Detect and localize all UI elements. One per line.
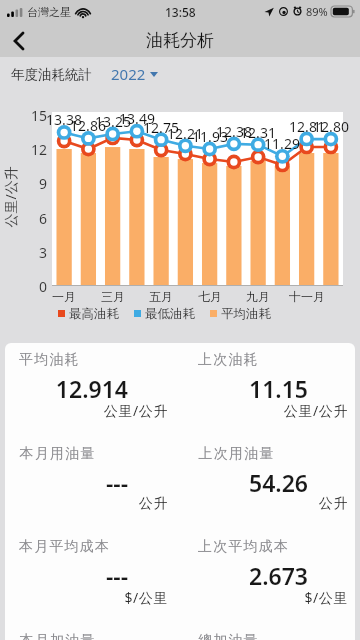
staticText: 2022 bbox=[111, 64, 146, 84]
staticText: 12.21 bbox=[166, 124, 204, 143]
staticText: 13.38 bbox=[45, 110, 83, 129]
staticText: 油耗分析 bbox=[146, 30, 214, 51]
staticText: 12.31 bbox=[239, 123, 277, 142]
staticText: $/公里 bbox=[193, 588, 348, 607]
staticText: 13.25 bbox=[94, 112, 132, 131]
staticText: 13.49 bbox=[118, 109, 156, 128]
staticText: 台灣之星 bbox=[27, 5, 71, 19]
staticText: --- bbox=[14, 467, 128, 498]
staticText: 13:58 bbox=[165, 4, 196, 20]
staticText: 公里/公升 bbox=[193, 401, 348, 420]
staticText: 2.673 bbox=[193, 560, 308, 591]
staticText: 12.86 bbox=[69, 116, 107, 135]
staticText: 十一月 bbox=[285, 289, 329, 304]
staticText: 九月 bbox=[236, 289, 280, 304]
staticText: 11.29 bbox=[263, 134, 301, 153]
staticText: 上次平均成本 bbox=[198, 538, 290, 556]
button[interactable]: 2022 bbox=[109, 60, 160, 88]
staticText: 0 bbox=[20, 277, 47, 296]
staticText: 平均油耗 bbox=[221, 306, 271, 320]
staticText: 公升 bbox=[14, 495, 168, 513]
staticText: 15 bbox=[20, 106, 47, 125]
staticText: 本月用油量 bbox=[19, 445, 95, 463]
staticText: $/公里 bbox=[14, 588, 168, 607]
staticText: 上次油耗 bbox=[198, 351, 259, 369]
staticText: 七月 bbox=[188, 289, 232, 304]
staticText: 上次用油量 bbox=[198, 445, 274, 463]
staticText: 12.38 bbox=[215, 122, 253, 141]
staticText: 12.81 bbox=[288, 117, 326, 136]
staticText: 總加油量 bbox=[198, 632, 259, 640]
staticText: 最低油耗 bbox=[145, 306, 195, 320]
button[interactable]: Back bbox=[0, 25, 38, 57]
staticText: 平均油耗 bbox=[19, 351, 80, 369]
staticText: 12.80 bbox=[312, 117, 350, 136]
staticText: 本月平均成本 bbox=[19, 538, 111, 556]
staticText: 公升 bbox=[193, 495, 348, 513]
staticText: 9 bbox=[20, 174, 47, 193]
staticText: 12.75 bbox=[142, 118, 180, 137]
staticText: 公里/公升 bbox=[0, 165, 19, 227]
staticText: 11.15 bbox=[193, 373, 308, 404]
staticText: 五月 bbox=[139, 289, 183, 304]
staticText: 6 bbox=[20, 209, 47, 228]
staticText: 最高油耗 bbox=[69, 306, 119, 320]
staticText: 54.26 bbox=[193, 467, 308, 498]
staticText: 年度油耗統計 bbox=[11, 66, 92, 83]
staticText: 3 bbox=[20, 243, 47, 262]
staticText: 三月 bbox=[91, 289, 135, 304]
staticText: 11.93 bbox=[191, 127, 229, 146]
staticText: --- bbox=[14, 560, 128, 591]
staticText: 12.914 bbox=[14, 373, 128, 404]
staticText: 本月加油量 bbox=[19, 632, 95, 640]
staticText: 89% bbox=[306, 4, 328, 19]
staticText: 公里/公升 bbox=[14, 401, 168, 420]
staticText: 12 bbox=[20, 140, 47, 159]
staticText: 一月 bbox=[42, 289, 86, 304]
